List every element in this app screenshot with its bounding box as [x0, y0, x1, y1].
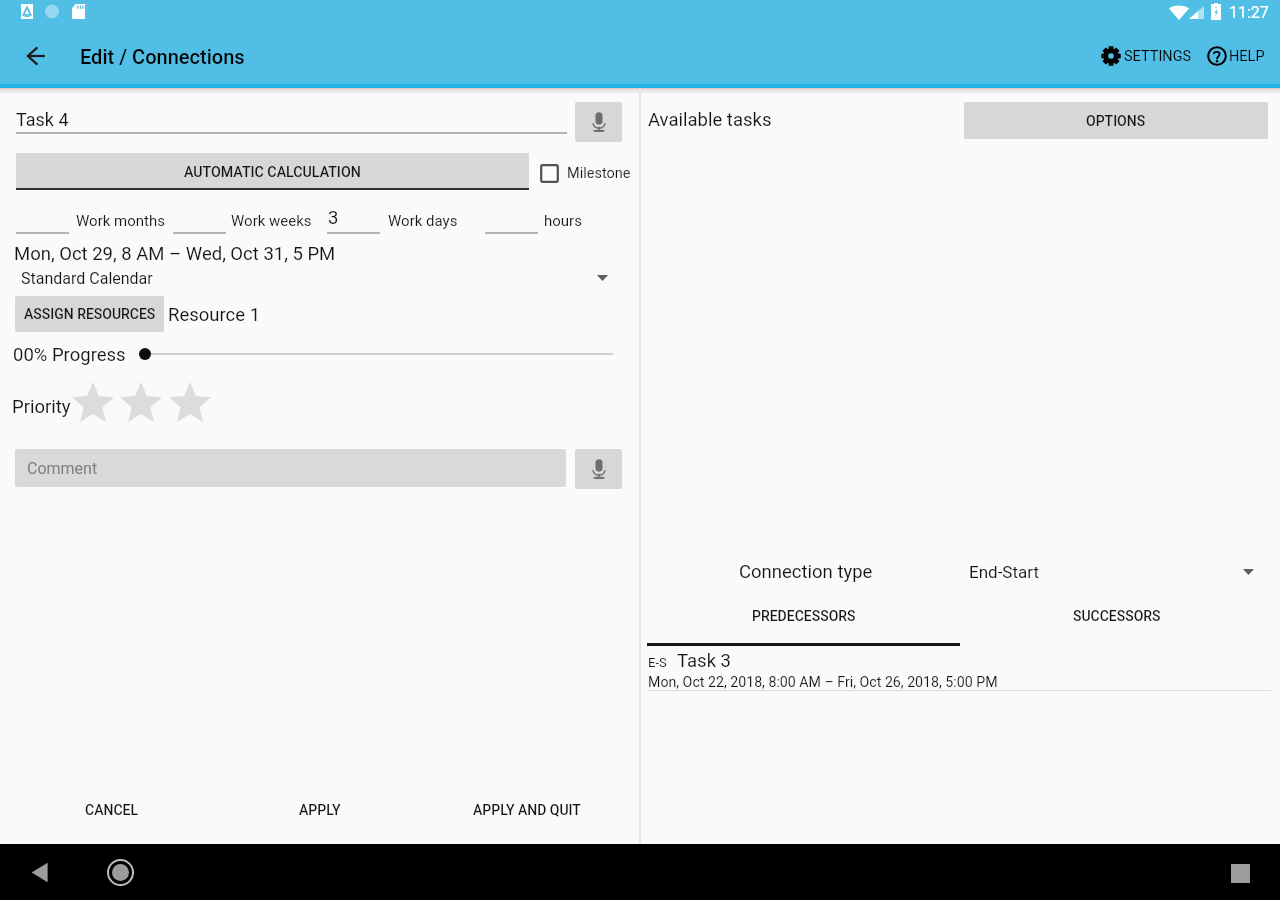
button[interactable] — [173, 206, 226, 234]
staticText: 11:27 — [1229, 3, 1269, 22]
button[interactable]: Home — [100, 852, 140, 892]
button[interactable] — [139, 344, 613, 367]
button[interactable]: Comment — [15, 449, 566, 487]
staticText: Priority — [12, 396, 71, 418]
staticText: SETTINGS — [1124, 48, 1192, 65]
staticText: OPTIONS — [1086, 113, 1146, 129]
staticText: Mon, Oct 29, 8 AM – Wed, Oct 31, 5 PM — [14, 243, 336, 265]
button[interactable]: 3 — [327, 206, 380, 234]
button[interactable] — [16, 206, 69, 234]
button[interactable]: ASSIGN RESOURCES — [15, 296, 164, 332]
button[interactable]: Milestone — [540, 161, 631, 185]
staticText: Work days — [388, 212, 458, 230]
staticText: Available tasks — [648, 109, 772, 131]
staticText: SUCCESSORS — [1073, 608, 1161, 624]
button[interactable]: Voice input for comment — [575, 449, 622, 489]
button[interactable]: Set priority 3 — [169, 382, 211, 422]
staticText: Edit / Connections — [80, 45, 245, 68]
button[interactable]: Recent apps — [1220, 853, 1260, 893]
staticText: Connection type — [739, 561, 873, 583]
button[interactable]: Task 4 — [16, 104, 567, 134]
button[interactable]: Back — [20, 852, 60, 892]
staticText: 3 — [328, 207, 339, 229]
staticText: hours — [544, 212, 582, 230]
staticText: PREDECESSORS — [752, 608, 856, 624]
button[interactable]: Standard Calendar — [0, 267, 625, 291]
staticText: Mon, Oct 22, 2018, 8:00 AM – Fri, Oct 26… — [648, 674, 998, 691]
staticText: Work months — [76, 212, 165, 230]
staticText: ASSIGN RESOURCES — [24, 306, 156, 322]
button[interactable]: SUCCESSORS — [960, 596, 1273, 636]
staticText: E-S — [648, 655, 667, 670]
button[interactable]: HELP — [1207, 43, 1265, 69]
button[interactable]: Set priority 1 — [72, 382, 114, 422]
button[interactable]: SETTINGS — [1101, 43, 1192, 69]
staticText: AUTOMATIC CALCULATION — [184, 164, 361, 181]
staticText: APPLY — [299, 802, 341, 818]
button[interactable]: E-S — [641, 649, 1271, 695]
button[interactable]: End-Start — [961, 553, 1271, 589]
staticText: End-Start — [969, 562, 1039, 582]
button[interactable]: PREDECESSORS — [647, 596, 960, 636]
staticText: APPLY AND QUIT — [473, 802, 581, 818]
staticText: HELP — [1229, 48, 1265, 65]
staticText: Work weeks — [231, 212, 312, 230]
staticText: Task 3 — [677, 650, 731, 672]
button[interactable]: Voice input for task name — [575, 102, 622, 142]
button[interactable]: Set priority 2 — [120, 382, 162, 422]
staticText: CANCEL — [85, 802, 139, 818]
staticText: Standard Calendar — [21, 269, 153, 288]
button[interactable]: Mon, Oct 29, 8 AM – Wed, Oct 31, 5 PM — [14, 243, 344, 268]
button[interactable] — [485, 206, 538, 234]
button[interactable]: OPTIONS — [964, 102, 1268, 139]
button[interactable]: CANCEL — [42, 790, 182, 830]
staticText: Comment — [27, 459, 98, 478]
staticText: 00% Progress — [13, 344, 126, 366]
staticText: Task 4 — [16, 109, 69, 130]
button[interactable]: APPLY — [250, 790, 390, 830]
staticText: Milestone — [567, 165, 631, 182]
button[interactable]: AUTOMATIC CALCULATION — [16, 153, 529, 188]
button[interactable]: APPLY AND QUIT — [457, 790, 597, 830]
staticText: Resource 1 — [168, 304, 261, 326]
button[interactable]: Back — [12, 32, 60, 80]
